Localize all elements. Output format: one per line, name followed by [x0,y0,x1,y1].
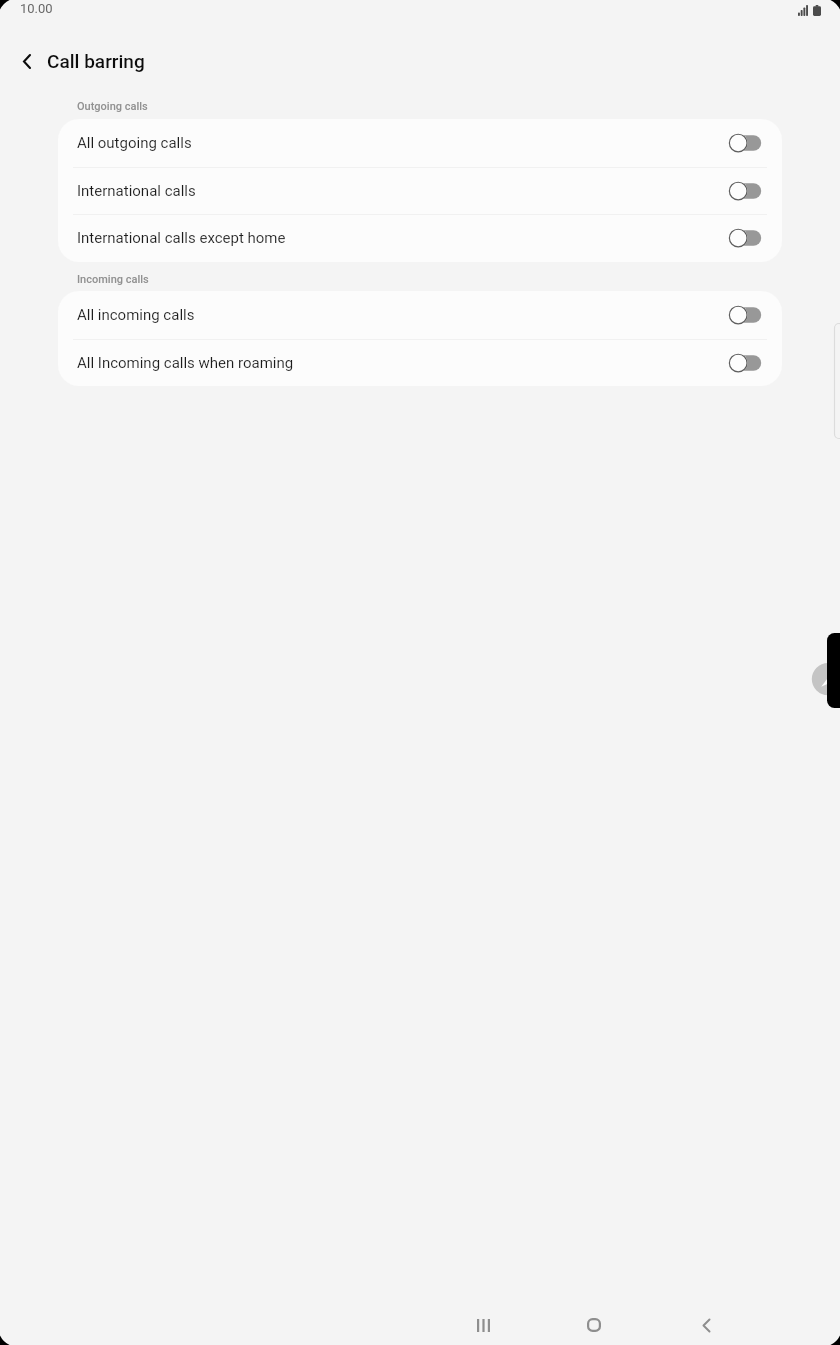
staticText: International calls [77,182,196,200]
button[interactable]: Toggle [729,353,761,373]
staticText: Call barring [47,50,145,72]
button[interactable]: Home [564,1295,624,1345]
button[interactable]: International calls except home [58,214,782,262]
button[interactable]: International calls [58,167,782,215]
staticText: Outgoing calls [77,100,148,113]
button[interactable]: Toggle [729,181,761,201]
button[interactable]: Back [676,1295,736,1345]
staticText: All incoming calls [77,306,195,324]
button[interactable]: All Incoming calls when roaming [58,339,782,386]
staticText: Incoming calls [77,273,149,286]
button[interactable]: Toggle [729,305,761,325]
button[interactable]: Navigate up [8,43,45,80]
staticText: All outgoing calls [77,134,192,152]
button[interactable]: All incoming calls [58,291,782,339]
staticText: All Incoming calls when roaming [77,354,294,372]
staticText: 10.00 [20,1,53,16]
button[interactable]: Open edge panel [811,633,840,708]
button[interactable]: Toggle [729,228,761,248]
button[interactable]: Toggle [729,133,761,153]
button[interactable]: All outgoing calls [58,119,782,167]
staticText: International calls except home [77,229,286,247]
button[interactable]: Recent apps [453,1295,513,1345]
